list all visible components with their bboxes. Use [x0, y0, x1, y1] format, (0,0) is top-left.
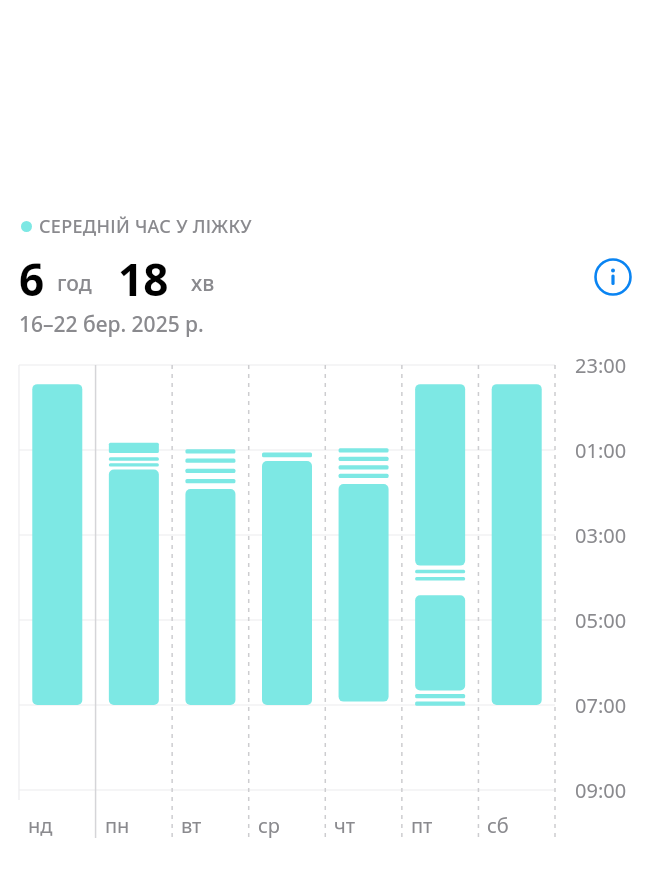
staticText: 05:00 — [575, 607, 627, 634]
staticText: хв — [191, 269, 215, 298]
button[interactable]: Info — [592, 256, 634, 298]
staticText: год — [57, 269, 92, 298]
staticText: вт — [181, 812, 202, 839]
staticText: 16–22 бер. 2025 р. — [19, 310, 204, 339]
staticText: чт — [334, 812, 356, 839]
staticText: пн — [105, 812, 130, 839]
staticText: сб — [487, 812, 509, 839]
staticText: пт — [411, 812, 433, 839]
staticText: 6 — [19, 249, 45, 309]
staticText: 07:00 — [575, 692, 627, 719]
staticText: нд — [28, 812, 53, 839]
staticText: 01:00 — [575, 437, 627, 464]
staticText: СЕРЕДНІЙ ЧАС У ЛІЖКУ — [39, 214, 252, 239]
staticText: 09:00 — [575, 777, 627, 804]
staticText: ср — [258, 812, 281, 839]
staticText: 23:00 — [575, 352, 627, 379]
staticText: 03:00 — [575, 522, 627, 549]
staticText: 18 — [118, 249, 169, 309]
